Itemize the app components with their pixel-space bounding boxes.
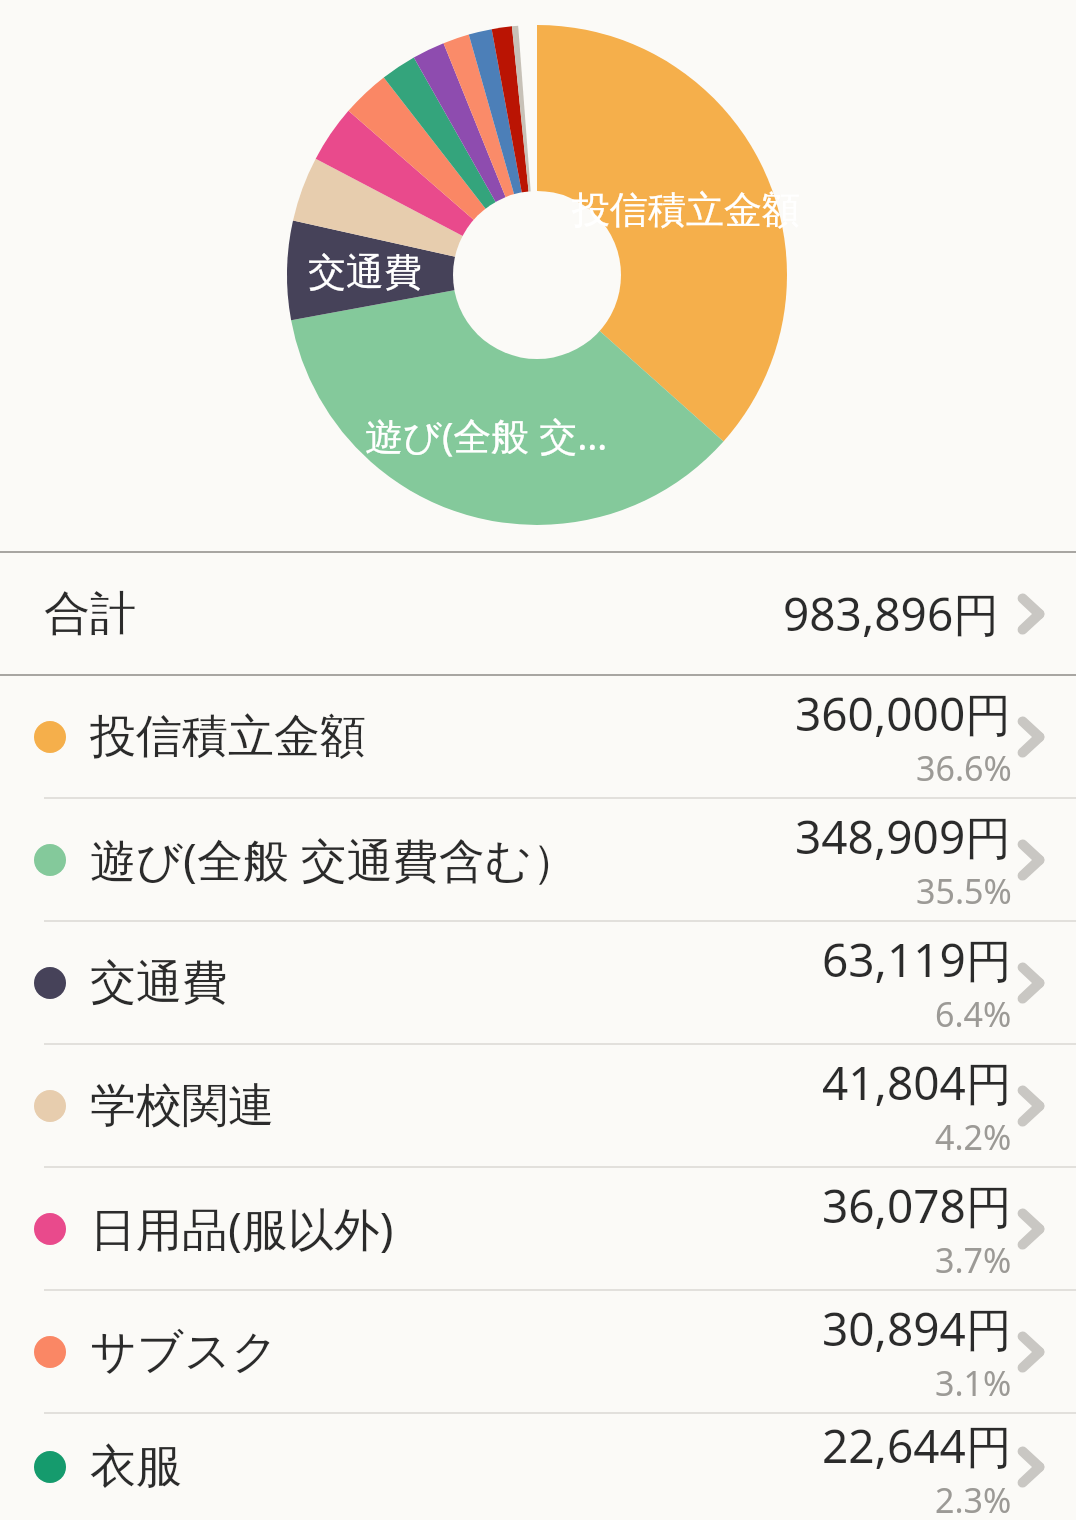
staticText: 41,804円 [822, 1051, 1012, 1114]
button[interactable]: 投信積立金額 [0, 676, 1076, 797]
staticText: 360,000円 [795, 682, 1012, 745]
other: 詳細 [1016, 1203, 1046, 1255]
staticText: 348,909円 [795, 805, 1012, 868]
staticText: 983,896円 [783, 582, 1000, 645]
other: 詳細 [1016, 1441, 1046, 1493]
staticText: 4.2% [935, 1114, 1012, 1160]
staticText: 合計 [44, 585, 136, 643]
staticText: サブスク [90, 1323, 279, 1381]
staticText: 30,894円 [822, 1297, 1012, 1360]
button[interactable]: 遊び(全般 交通費含む） [0, 799, 1076, 920]
button[interactable]: 合計 [0, 553, 1076, 674]
staticText: 投信積立金額 [90, 708, 366, 766]
staticText: 学校関連 [90, 1077, 274, 1135]
staticText: 衣服 [90, 1438, 182, 1496]
staticText: 日用品(服以外) [90, 1197, 394, 1260]
other: 詳細 [1016, 834, 1046, 886]
staticText: 遊び(全般 交… [365, 409, 608, 461]
staticText: 36,078円 [822, 1174, 1012, 1237]
button[interactable]: 学校関連 [0, 1045, 1076, 1166]
button[interactable]: サブスク [0, 1291, 1076, 1412]
staticText: 2.3% [935, 1477, 1012, 1520]
staticText: 63,119円 [822, 928, 1012, 991]
staticText: 投信積立金額 [572, 186, 800, 234]
staticText: 6.4% [935, 991, 1012, 1037]
other: 詳細 [1016, 711, 1046, 763]
staticText: 遊び(全般 交通費含む） [90, 828, 578, 891]
other: 詳細 [1016, 1080, 1046, 1132]
other: 詳細 [1016, 588, 1046, 640]
staticText: 交通費 [90, 954, 228, 1012]
button[interactable]: 日用品(服以外) [0, 1168, 1076, 1289]
staticText: 35.5% [916, 868, 1012, 914]
staticText: 3.7% [935, 1237, 1012, 1283]
staticText: 交通費 [308, 248, 422, 296]
button[interactable]: 衣服 [0, 1414, 1076, 1520]
button[interactable]: 交通費 [0, 922, 1076, 1043]
staticText: 36.6% [916, 745, 1012, 791]
other: 詳細 [1016, 957, 1046, 1009]
staticText: 3.1% [935, 1360, 1012, 1406]
staticText: 22,644円 [822, 1414, 1012, 1477]
other: 詳細 [1016, 1326, 1046, 1378]
